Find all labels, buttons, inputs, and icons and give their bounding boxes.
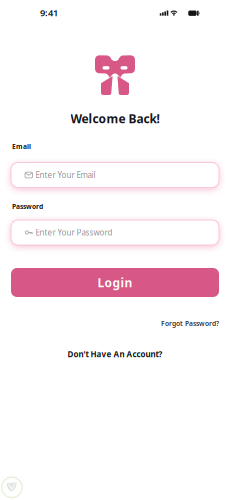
staticText: Email: [12, 142, 31, 151]
staticText: Login: [97, 274, 132, 290]
staticText: Enter Your Email: [35, 170, 95, 180]
staticText: Don't Have An Account?: [67, 349, 162, 359]
staticText: 9:41: [40, 6, 58, 19]
button[interactable]: Login: [11, 268, 219, 297]
staticText: Password: [12, 202, 43, 211]
staticText: Enter Your Password: [35, 227, 112, 238]
button[interactable]: Don't Have An Account?: [67, 349, 162, 359]
button[interactable]: Forgot Password?: [161, 319, 219, 328]
button[interactable]: Enter Your Password: [11, 220, 219, 245]
button[interactable]: Enter Your Email: [11, 162, 219, 187]
staticText: Forgot Password?: [161, 319, 219, 328]
staticText: Welcome Back!: [70, 110, 159, 126]
